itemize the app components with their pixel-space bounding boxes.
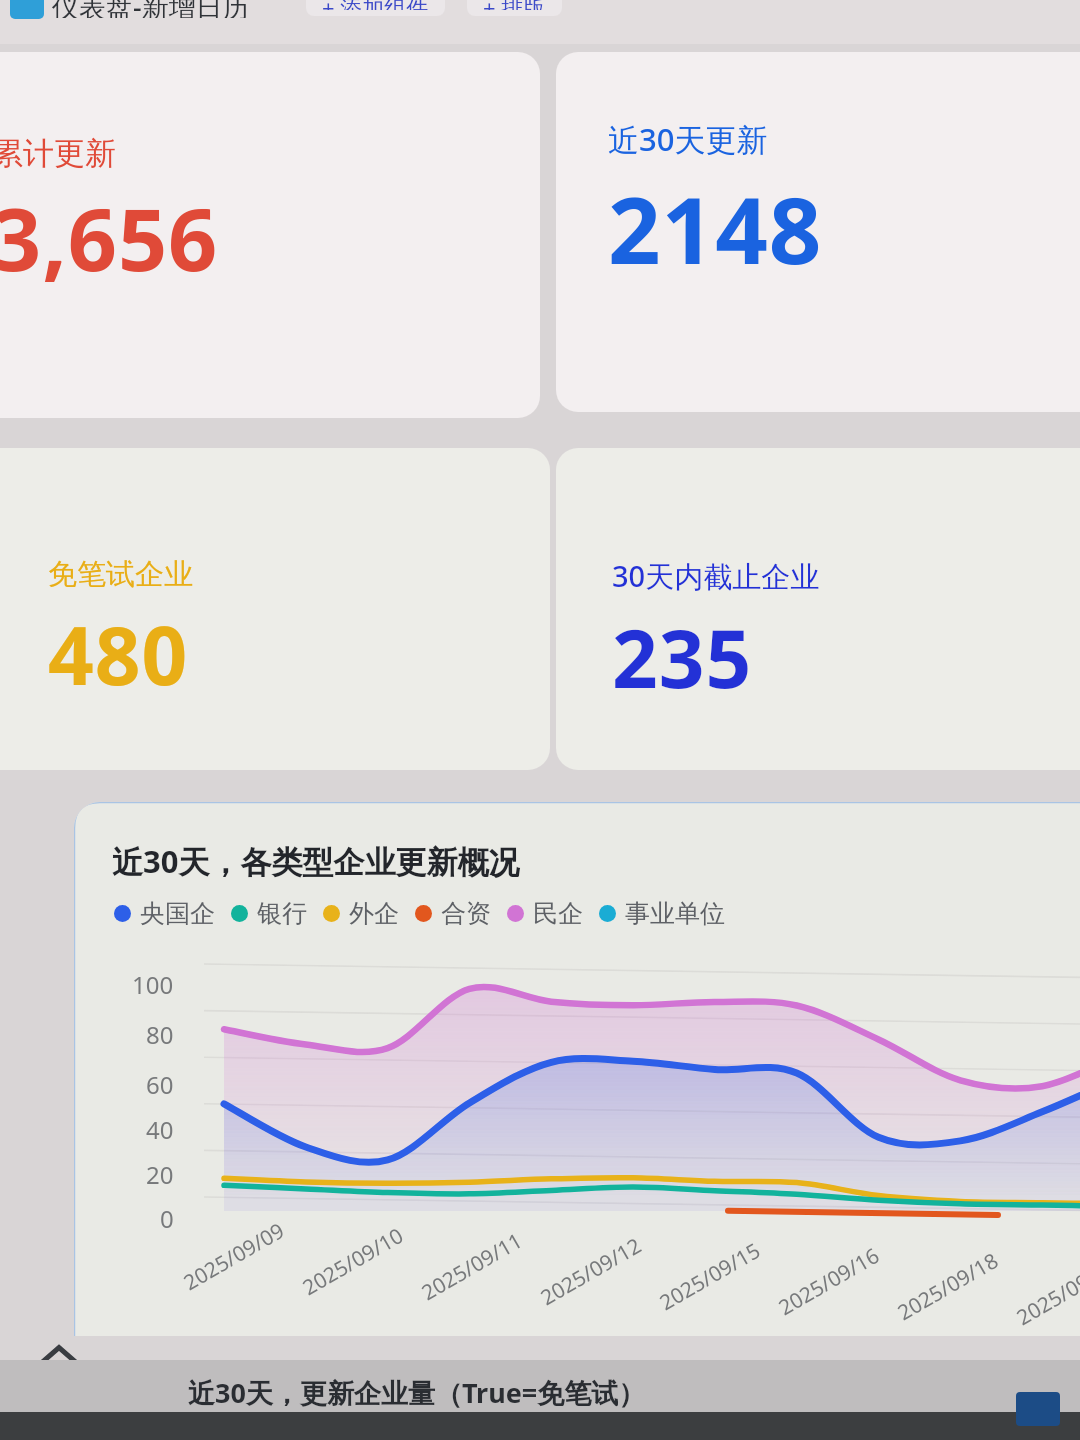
staticText: 近30天，各类型企业更新概况 [112,840,520,882]
staticText: 480 [48,599,189,708]
button[interactable]: Collapse [28,1324,90,1386]
staticText: 2148 [608,166,823,291]
staticText: 合资 [441,898,491,929]
button[interactable]: + 排版 [467,0,562,16]
button[interactable]: 近30天更新 [556,52,1080,412]
staticText: 80 [146,1018,174,1051]
button[interactable]: 近30天，各类型企业更新概况 [74,802,1080,1336]
button[interactable]: + 添加组件 [306,0,445,16]
button[interactable]: 银行 [231,898,323,929]
staticText: 2025/09/12 [535,1231,647,1312]
staticText: 3,656 [0,179,219,296]
staticText: 2025/09/16 [773,1241,885,1322]
staticText: 20 [146,1158,174,1191]
staticText: 免笔试企业 [48,556,193,593]
staticText: 民企 [533,898,583,929]
staticText: 40 [146,1113,174,1146]
button[interactable]: 外企 [323,898,415,929]
staticText: + 添加组件 [322,0,429,10]
button[interactable]: 民企 [507,898,599,929]
staticText: 2025/09/10 [297,1221,409,1302]
button[interactable]: 事业单位 [599,898,741,929]
staticText: 外企 [349,898,399,929]
staticText: 仪表盘-新增日历 [52,0,250,18]
staticText: 235 [612,602,753,711]
staticText: 近30天，更新企业量（True=免笔试） [188,1374,646,1411]
staticText: 100 [132,968,174,1001]
button[interactable]: 央国企 [114,898,231,929]
staticText: 银行 [257,898,307,929]
button[interactable]: 免笔试企业 [0,448,550,770]
staticText: 央国企 [140,898,215,929]
staticText: 事业单位 [625,898,725,929]
button[interactable]: 30天内截止企业 [556,448,1080,770]
staticText: 累计更新 [0,134,116,173]
other: Dashboard icon [10,0,44,19]
button[interactable]: 累计更新 [0,52,540,418]
staticText: 2025/09/19 [1011,1251,1080,1332]
staticText: 30天内截止企业 [612,556,820,596]
staticText: 2025/09/18 [892,1246,1004,1327]
staticText: 2025/09/09 [178,1216,290,1297]
other: Watermark [1016,1392,1060,1426]
staticText: 近30天更新 [608,118,768,160]
staticText: 2025/09/15 [654,1236,766,1317]
staticText: 60 [146,1068,174,1101]
staticText: 2025/09/11 [416,1226,528,1307]
staticText: + 排版 [483,0,546,10]
button[interactable]: 合资 [415,898,507,929]
staticText: 0 [160,1202,174,1235]
